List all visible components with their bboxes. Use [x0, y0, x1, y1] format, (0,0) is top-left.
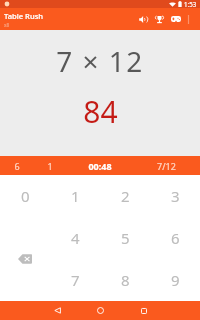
staticText: 8: [121, 270, 130, 290]
button[interactable]: Home: [79, 301, 122, 320]
button[interactable]: 8: [100, 259, 150, 301]
button[interactable]: Backspace: [0, 217, 50, 301]
button[interactable]: More options: [184, 8, 193, 30]
staticText: 1: [47, 160, 53, 172]
staticText: 1: [71, 186, 80, 206]
button[interactable]: 6: [0, 156, 33, 175]
button[interactable]: Achievements: [151, 8, 167, 30]
button[interactable]: 1: [50, 175, 100, 217]
staticText: 4: [71, 228, 80, 248]
staticText: 6: [171, 228, 180, 248]
staticText: 9: [171, 270, 180, 290]
button[interactable]: Recent apps: [122, 301, 165, 320]
button[interactable]: 4: [50, 217, 100, 259]
button[interactable]: 6: [150, 217, 200, 259]
staticText: 7: [71, 270, 80, 290]
staticText: 2: [121, 186, 130, 206]
button[interactable]: 2: [100, 175, 150, 217]
staticText: 00:48: [88, 160, 112, 172]
staticText: 7 × 12: [56, 42, 144, 80]
button[interactable]: 3: [150, 175, 200, 217]
staticText: 3: [171, 186, 180, 206]
button[interactable]: 00:48: [66, 156, 133, 175]
button[interactable]: 0: [0, 175, 50, 217]
staticText: 5: [121, 228, 130, 248]
button[interactable]: Sound: [135, 8, 151, 30]
staticText: 1:53: [184, 0, 197, 8]
button[interactable]: 9: [150, 259, 200, 301]
button[interactable]: Play Games: [167, 8, 184, 30]
staticText: 6: [14, 160, 20, 172]
staticText: x8: [4, 22, 10, 28]
staticText: Table Rush: [4, 11, 44, 21]
button[interactable]: Back: [36, 301, 79, 320]
button[interactable]: 5: [100, 217, 150, 259]
button[interactable]: 7: [50, 259, 100, 301]
staticText: 0: [21, 186, 30, 206]
staticText: 84: [83, 91, 118, 132]
staticText: 7/12: [157, 160, 176, 172]
button[interactable]: 1: [33, 156, 66, 175]
button[interactable]: 7/12: [133, 156, 200, 175]
